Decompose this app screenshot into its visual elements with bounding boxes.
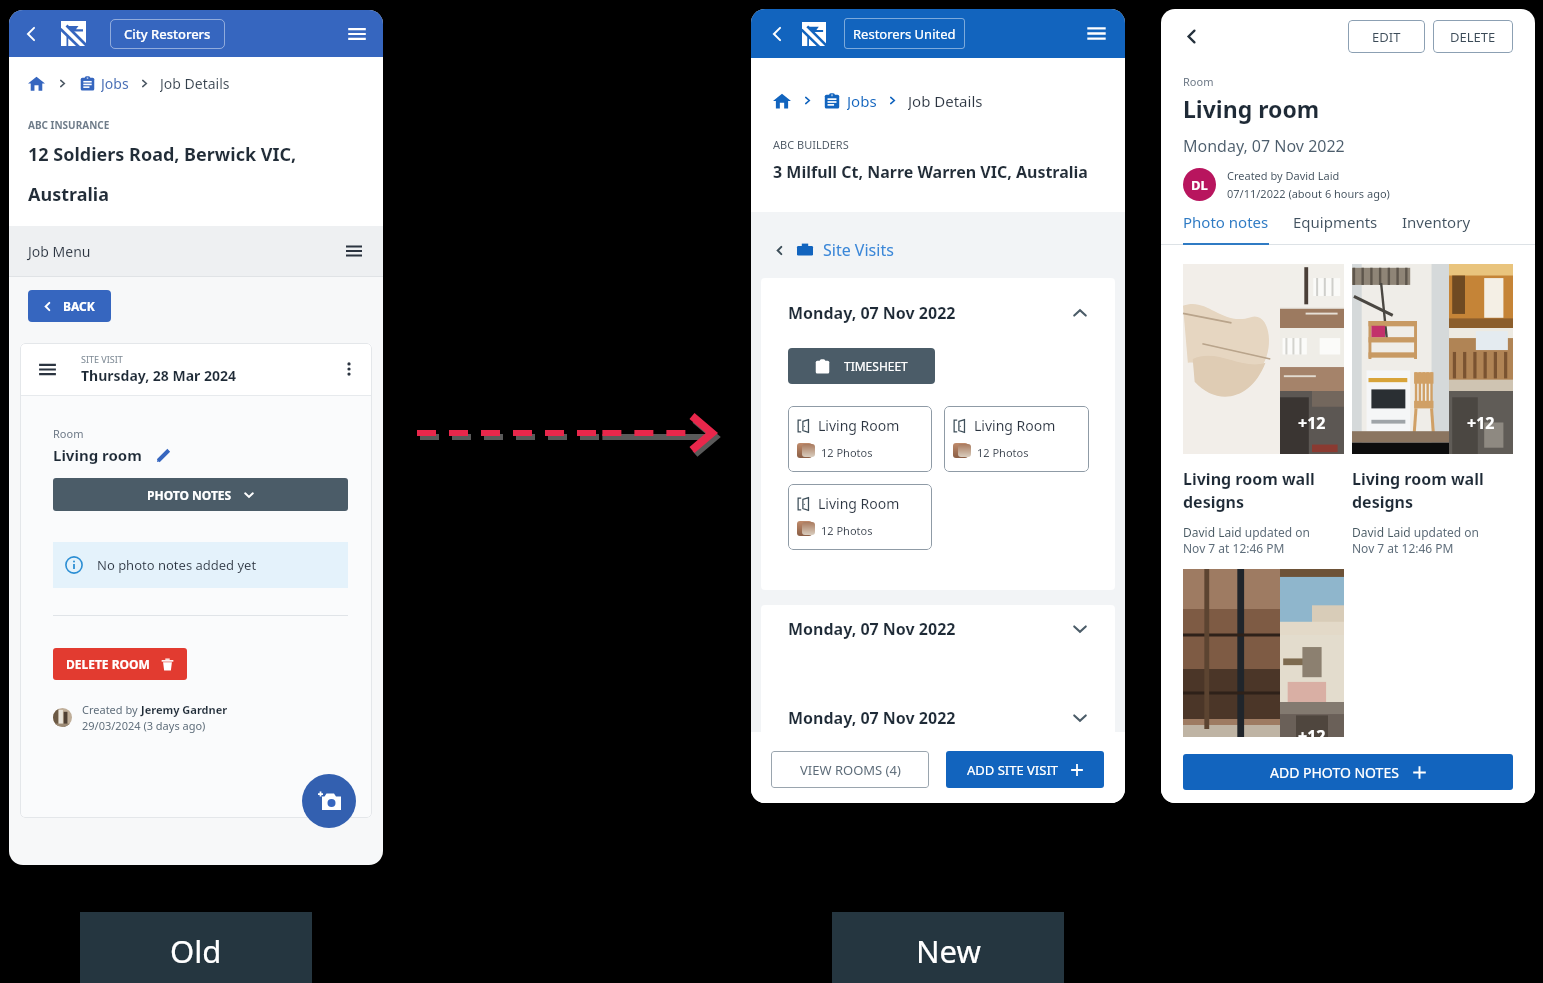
button[interactable]: More options bbox=[340, 360, 358, 378]
button[interactable]: Reorder bbox=[37, 359, 58, 380]
staticText: Job Menu bbox=[28, 242, 91, 261]
button[interactable]: EDIT bbox=[1348, 20, 1425, 53]
staticText: Living room bbox=[1183, 93, 1320, 124]
staticText: Job Details bbox=[160, 74, 230, 92]
staticText: Old bbox=[170, 930, 222, 972]
staticText: Photo notes bbox=[1183, 212, 1269, 232]
staticText: Living Room bbox=[818, 494, 900, 513]
button[interactable]: Back bbox=[1181, 26, 1202, 47]
staticText: No photo notes added yet bbox=[97, 556, 257, 574]
button[interactable]: Living Room bbox=[788, 406, 932, 472]
staticText: Jobs bbox=[847, 91, 877, 110]
staticText: David Laid updated on Nov 7 at 12:46 PM bbox=[1352, 524, 1500, 556]
staticText: VIEW ROOMS (4) bbox=[800, 761, 901, 779]
button[interactable]: Add photo bbox=[302, 774, 356, 828]
staticText: ADD PHOTO NOTES bbox=[1270, 763, 1399, 782]
button[interactable]: Menu bbox=[1085, 22, 1108, 45]
button[interactable]: Edit room bbox=[156, 448, 171, 463]
staticText: Equipments bbox=[1293, 212, 1378, 232]
button[interactable]: Living Room bbox=[788, 484, 932, 550]
button[interactable]: TIMESHEET bbox=[788, 348, 935, 384]
button[interactable]: VIEW ROOMS (4) bbox=[771, 751, 929, 788]
button[interactable]: Back bbox=[766, 23, 788, 45]
staticText: Monday, 07 Nov 2022 bbox=[788, 302, 956, 324]
button[interactable]: DELETE bbox=[1433, 20, 1513, 53]
staticText: Restorers United bbox=[853, 25, 956, 43]
staticText: ABC INSURANCE bbox=[28, 118, 110, 132]
staticText: SITE VISIT bbox=[81, 353, 123, 365]
staticText: BACK bbox=[63, 298, 95, 314]
staticText: David Laid updated on Nov 7 at 12:46 PM bbox=[1183, 524, 1331, 556]
staticText: DL bbox=[1191, 176, 1208, 194]
button[interactable]: Back bbox=[20, 23, 42, 45]
staticText: New bbox=[916, 930, 981, 972]
button[interactable]: Job menu bbox=[344, 241, 364, 261]
button[interactable]: +12 bbox=[1183, 264, 1344, 556]
staticText: Thursday, 28 Mar 2024 bbox=[81, 366, 237, 385]
staticText: 12 Soldiers Road, Berwick VIC, Australia bbox=[28, 142, 318, 206]
staticText: 29/03/2024 (3 days ago) bbox=[82, 718, 206, 733]
staticText: 12 Photos bbox=[821, 445, 873, 460]
staticText: 12 Photos bbox=[977, 445, 1029, 460]
staticText: Living Room bbox=[974, 416, 1056, 435]
staticText: Site Visits bbox=[823, 239, 894, 261]
staticText: Room bbox=[1183, 74, 1214, 89]
button[interactable]: Monday, 07 Nov 2022 bbox=[788, 707, 1089, 729]
staticText: Monday, 07 Nov 2022 bbox=[788, 618, 956, 640]
button[interactable]: +12 bbox=[1352, 264, 1513, 556]
button[interactable]: Site Visits bbox=[773, 239, 894, 261]
button[interactable]: DELETE ROOM bbox=[53, 648, 187, 680]
staticText: TIMESHEET bbox=[844, 358, 908, 374]
staticText: Jobs bbox=[101, 74, 129, 92]
staticText: Job Details bbox=[908, 91, 983, 110]
staticText: Room bbox=[53, 426, 84, 441]
button[interactable]: City Restorers bbox=[110, 19, 225, 49]
button[interactable]: ADD PHOTO NOTES bbox=[1183, 754, 1513, 790]
button[interactable]: Photo notes bbox=[1183, 212, 1269, 245]
button[interactable]: BACK bbox=[28, 290, 111, 322]
staticText: Created by bbox=[82, 702, 141, 717]
button[interactable]: Equipments bbox=[1293, 212, 1378, 245]
staticText: Created by David Laid bbox=[1227, 168, 1340, 183]
staticText: +12 bbox=[1298, 725, 1326, 747]
staticText: DELETE bbox=[1450, 28, 1496, 46]
staticText: City Restorers bbox=[124, 25, 211, 43]
button[interactable]: Menu bbox=[346, 23, 368, 45]
staticText: Monday, 07 Nov 2022 bbox=[1183, 135, 1345, 157]
button[interactable]: Inventory bbox=[1402, 212, 1471, 245]
button[interactable]: PHOTO NOTES bbox=[53, 478, 348, 511]
button[interactable]: ADD SITE VISIT bbox=[946, 751, 1104, 788]
staticText: 07/11/2022 (about 6 hours ago) bbox=[1227, 186, 1390, 201]
staticText: ADD SITE VISIT bbox=[967, 761, 1059, 779]
staticText: Living room wall designs bbox=[1183, 468, 1344, 513]
button[interactable]: Living Room bbox=[944, 406, 1089, 472]
staticText: DELETE ROOM bbox=[66, 656, 150, 672]
staticText: Monday, 07 Nov 2022 bbox=[788, 707, 956, 729]
staticText: ABC BUILDERS bbox=[773, 137, 849, 152]
staticText: +12 bbox=[1298, 412, 1326, 434]
staticText: +12 bbox=[1467, 412, 1495, 434]
staticText: 3 Milfull Ct, Narre Warren VIC, Australi… bbox=[773, 161, 1088, 183]
staticText: 12 Photos bbox=[821, 523, 873, 538]
staticText: EDIT bbox=[1372, 28, 1401, 46]
button[interactable]: Monday, 07 Nov 2022 bbox=[788, 618, 1089, 640]
staticText: Living Room bbox=[818, 416, 900, 435]
button[interactable]: Restorers United bbox=[844, 18, 965, 49]
staticText: Jeremy Gardner bbox=[141, 702, 228, 717]
staticText: PHOTO NOTES bbox=[147, 487, 232, 503]
staticText: Inventory bbox=[1402, 212, 1471, 232]
staticText: Living room wall designs bbox=[1352, 468, 1513, 513]
staticText: Living room bbox=[53, 445, 142, 465]
button[interactable]: Monday, 07 Nov 2022 bbox=[788, 302, 1089, 324]
